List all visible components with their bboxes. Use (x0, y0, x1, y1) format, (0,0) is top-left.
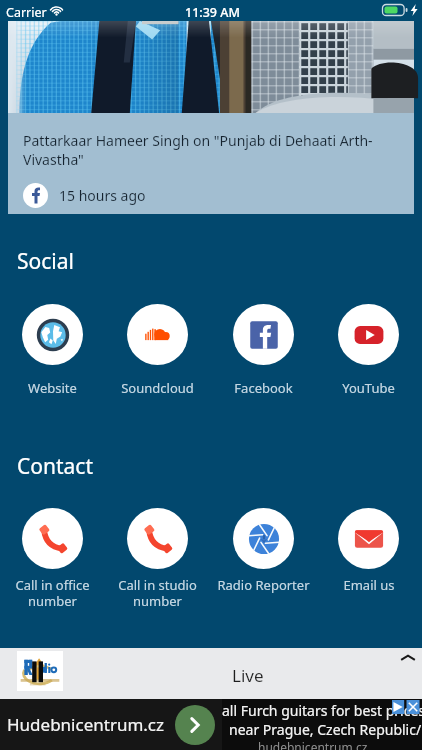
staticText: hudebnicentrum.cz (258, 739, 368, 750)
staticText: Call in office number (15, 576, 90, 609)
staticText: Social (17, 247, 74, 276)
button[interactable]: Call in studio number (127, 508, 188, 569)
staticText: Soundcloud (121, 379, 194, 397)
staticText: Pattarkaar Hameer Singh on "Punjab di De… (23, 131, 390, 169)
button[interactable]: Radio Reporter (233, 508, 294, 569)
button[interactable]: Facebook (233, 304, 294, 365)
button[interactable]: Website (22, 304, 83, 365)
button[interactable]: Open advertisement (175, 705, 215, 745)
staticText: 15 hours ago (59, 186, 146, 205)
staticText: Contact (17, 452, 93, 481)
staticText: Email us (343, 576, 395, 594)
button[interactable]: Soundcloud (127, 304, 188, 365)
staticText: near Prague, Czech Republic/ (229, 720, 422, 739)
other: Expand player (399, 652, 417, 664)
button[interactable]: Live (0, 648, 422, 699)
staticText: Carrier (6, 4, 47, 21)
button[interactable]: Email us (338, 508, 399, 569)
staticText: Call in studio number (118, 576, 197, 609)
staticText: Facebook (234, 379, 293, 397)
staticText: 11:39 AM (185, 4, 240, 21)
staticText: Hudebnicentrum.cz (7, 713, 165, 736)
other: Ad choices (392, 700, 421, 714)
staticText: all Furch guitars for best prices (222, 701, 422, 720)
staticText: Radio Reporter (217, 576, 310, 594)
button[interactable]: Call in office number (22, 508, 83, 569)
button[interactable]: YouTube (338, 304, 399, 365)
staticText: Live (232, 664, 264, 687)
button[interactable]: Hudebnicentrum.cz (0, 699, 422, 750)
button[interactable]: Pattarkaar Hameer Singh on "Punjab di De… (8, 21, 414, 214)
staticText: YouTube (342, 379, 395, 397)
staticText: Website (28, 379, 77, 397)
